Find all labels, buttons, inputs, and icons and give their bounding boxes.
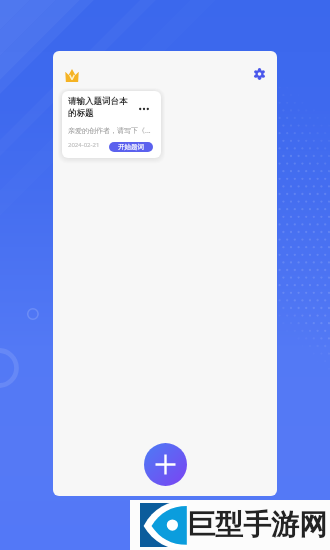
button[interactable]: 请输入题词台本的标题: [62, 91, 161, 158]
button[interactable]: More options: [135, 100, 153, 118]
button[interactable]: Settings: [249, 64, 269, 84]
staticText: 亲爱的创作者，请写下《...: [68, 126, 157, 136]
staticText: 2024-02-21: [68, 141, 100, 149]
staticText: 开始题词: [118, 143, 144, 151]
staticText: 巨型手游网: [187, 507, 327, 542]
button[interactable]: Add script: [144, 443, 187, 486]
button[interactable]: VIP: [62, 65, 82, 85]
staticText: 请输入题词台本的标题: [68, 96, 130, 118]
button[interactable]: 开始题词: [109, 142, 153, 152]
